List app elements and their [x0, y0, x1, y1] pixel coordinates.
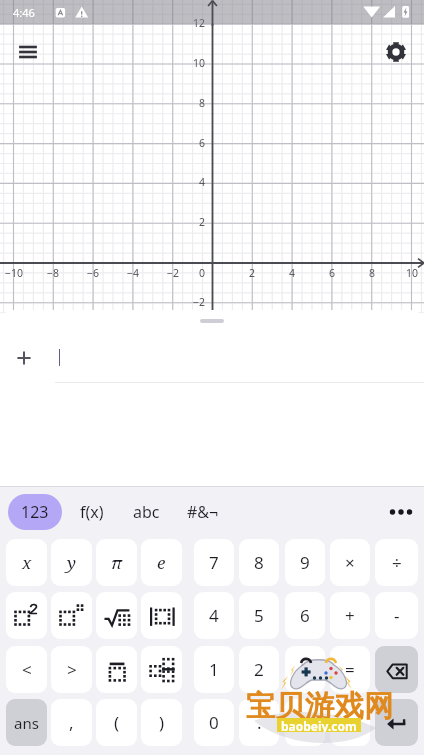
staticText: ) — [159, 711, 165, 734]
staticText: 12 — [165, 16, 205, 30]
staticText: −10 — [0, 266, 36, 280]
button[interactable] — [285, 699, 325, 746]
button[interactable]: , — [51, 699, 92, 746]
button[interactable] — [51, 592, 92, 639]
button[interactable] — [96, 592, 137, 639]
staticText: 10 — [390, 266, 424, 280]
staticText: e — [157, 551, 166, 574]
staticText: > — [67, 658, 77, 681]
button[interactable]: 5 — [239, 592, 279, 639]
button[interactable] — [6, 592, 47, 639]
button[interactable]: = — [330, 646, 370, 693]
staticText: 9 — [300, 551, 310, 574]
button[interactable] — [96, 646, 137, 693]
staticText: , — [69, 711, 74, 734]
staticText: 宝贝游戏网 — [246, 688, 394, 725]
button[interactable]: Drag handle — [200, 319, 224, 323]
staticText: 2 — [254, 658, 264, 681]
staticText: 5 — [254, 604, 264, 627]
staticText: 8 — [165, 96, 205, 110]
button[interactable]: 8 — [239, 539, 279, 586]
button[interactable]: < — [6, 646, 47, 693]
staticText: . — [257, 711, 262, 734]
button[interactable]: π — [96, 539, 137, 586]
staticText: π — [111, 551, 122, 574]
staticText: 8 — [254, 551, 264, 574]
staticText: ÷ — [392, 551, 402, 574]
staticText: −4 — [111, 266, 155, 280]
button[interactable]: ans — [6, 699, 47, 746]
button[interactable]: e — [141, 539, 182, 586]
button[interactable]: - — [375, 592, 418, 639]
button[interactable]: More options — [383, 494, 419, 530]
staticText: −6 — [71, 266, 115, 280]
staticText: 4 — [209, 604, 219, 627]
button[interactable] — [141, 592, 182, 639]
button[interactable]: ) — [141, 699, 182, 746]
staticText: f(x) — [80, 501, 104, 523]
staticText: −8 — [31, 266, 75, 280]
button[interactable]: 6 — [285, 592, 325, 639]
staticText: −2 — [151, 266, 195, 280]
button[interactable]: abc — [126, 494, 166, 530]
button[interactable]: 7 — [194, 539, 234, 586]
staticText: 4 — [165, 175, 205, 189]
staticText: abc — [133, 501, 160, 523]
staticText: + — [345, 604, 355, 627]
button[interactable]: f(x) — [72, 494, 112, 530]
button[interactable]: 9 — [285, 539, 325, 586]
button[interactable]: × — [330, 539, 370, 586]
button[interactable]: > — [51, 646, 92, 693]
button[interactable]: 4 — [194, 592, 234, 639]
staticText: 3 — [300, 658, 310, 681]
staticText: 6 — [165, 136, 205, 150]
button[interactable]: 3 — [285, 646, 325, 693]
button[interactable]: ( — [96, 699, 137, 746]
staticText: 0 — [165, 266, 205, 280]
staticText: 6 — [310, 266, 354, 280]
staticText: x — [22, 551, 32, 574]
button[interactable]: 2 — [239, 646, 279, 693]
button[interactable]: ÷ — [375, 539, 418, 586]
button[interactable]: Add expression — [6, 340, 42, 376]
button[interactable]: #&¬ — [182, 494, 224, 530]
button[interactable]: 123 — [8, 494, 62, 530]
staticText: #&¬ — [187, 501, 219, 523]
button[interactable]: + — [330, 592, 370, 639]
button[interactable] — [330, 699, 370, 746]
staticText: 2 — [165, 215, 205, 229]
button[interactable] — [375, 646, 418, 693]
button[interactable]: . — [239, 699, 279, 746]
button[interactable]: Settings — [378, 34, 414, 70]
button[interactable]: y — [51, 539, 92, 586]
staticText: ans — [14, 713, 39, 733]
staticText: - — [394, 604, 400, 627]
staticText: 4:46 — [13, 5, 35, 20]
button[interactable]: Menu — [9, 34, 45, 70]
staticText: 0 — [209, 711, 219, 734]
staticText: 1 — [209, 658, 219, 681]
staticText: 7 — [209, 551, 219, 574]
staticText: = — [345, 658, 355, 681]
button[interactable] — [141, 646, 182, 693]
staticText: 123 — [21, 501, 49, 523]
staticText: baobeiy.com — [281, 718, 357, 732]
staticText: ( — [114, 711, 120, 734]
staticText: 6 — [300, 604, 310, 627]
staticText: y — [67, 551, 76, 574]
staticText: 2 — [230, 266, 274, 280]
button[interactable] — [375, 699, 418, 746]
button[interactable]: 0 — [194, 699, 234, 746]
staticText: 8 — [350, 266, 394, 280]
staticText: −2 — [165, 295, 205, 309]
staticText: × — [345, 551, 355, 574]
staticText: 4 — [270, 266, 314, 280]
button[interactable]: 1 — [194, 646, 234, 693]
staticText: < — [22, 658, 32, 681]
button[interactable]: x — [6, 539, 47, 586]
staticText: 10 — [165, 56, 205, 70]
